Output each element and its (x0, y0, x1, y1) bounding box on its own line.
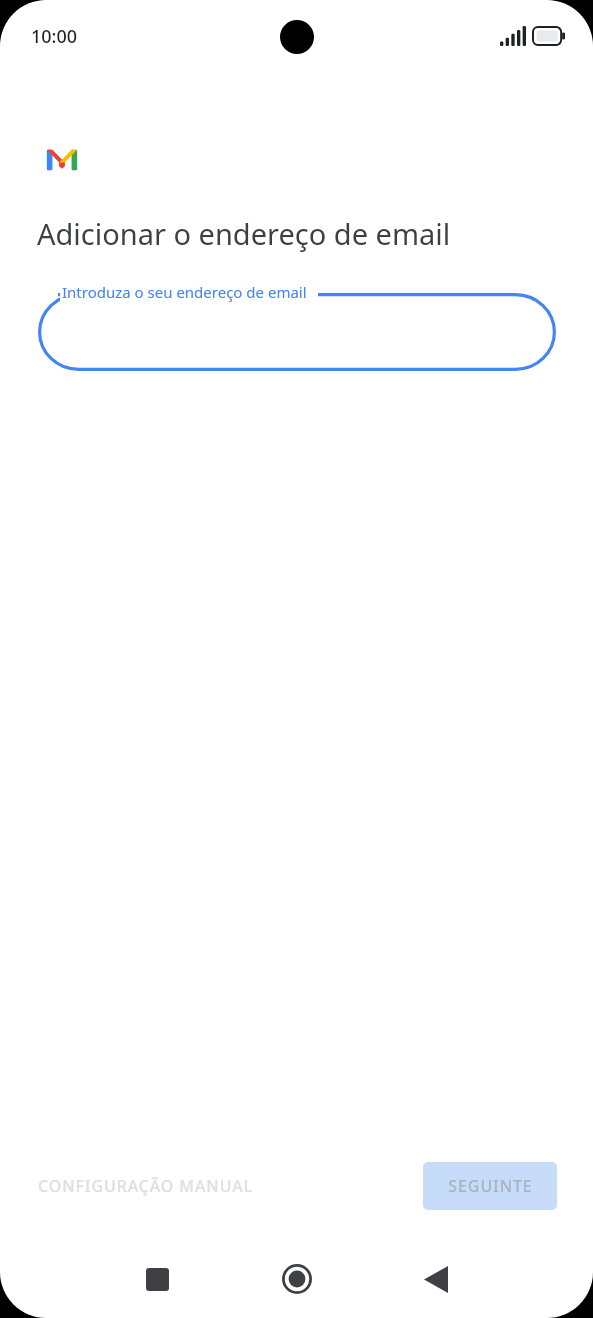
staticText: Adicionar o endereço de email (37, 214, 451, 253)
staticText: Introduza o seu endereço de email (62, 282, 307, 302)
staticText: 10:00 (31, 24, 78, 49)
staticText: SEGUINTE (448, 1175, 533, 1197)
button[interactable]: SEGUINTE (423, 1162, 557, 1210)
button[interactable]: CONFIGURAÇÃO MANUAL (36, 1163, 256, 1209)
button[interactable]: Introduza o seu endereço de email (38, 275, 556, 371)
button[interactable]: Recent apps (128, 1250, 186, 1308)
button[interactable]: Home (268, 1250, 326, 1308)
button[interactable]: Back (407, 1250, 465, 1308)
staticText: CONFIGURAÇÃO MANUAL (38, 1175, 254, 1197)
